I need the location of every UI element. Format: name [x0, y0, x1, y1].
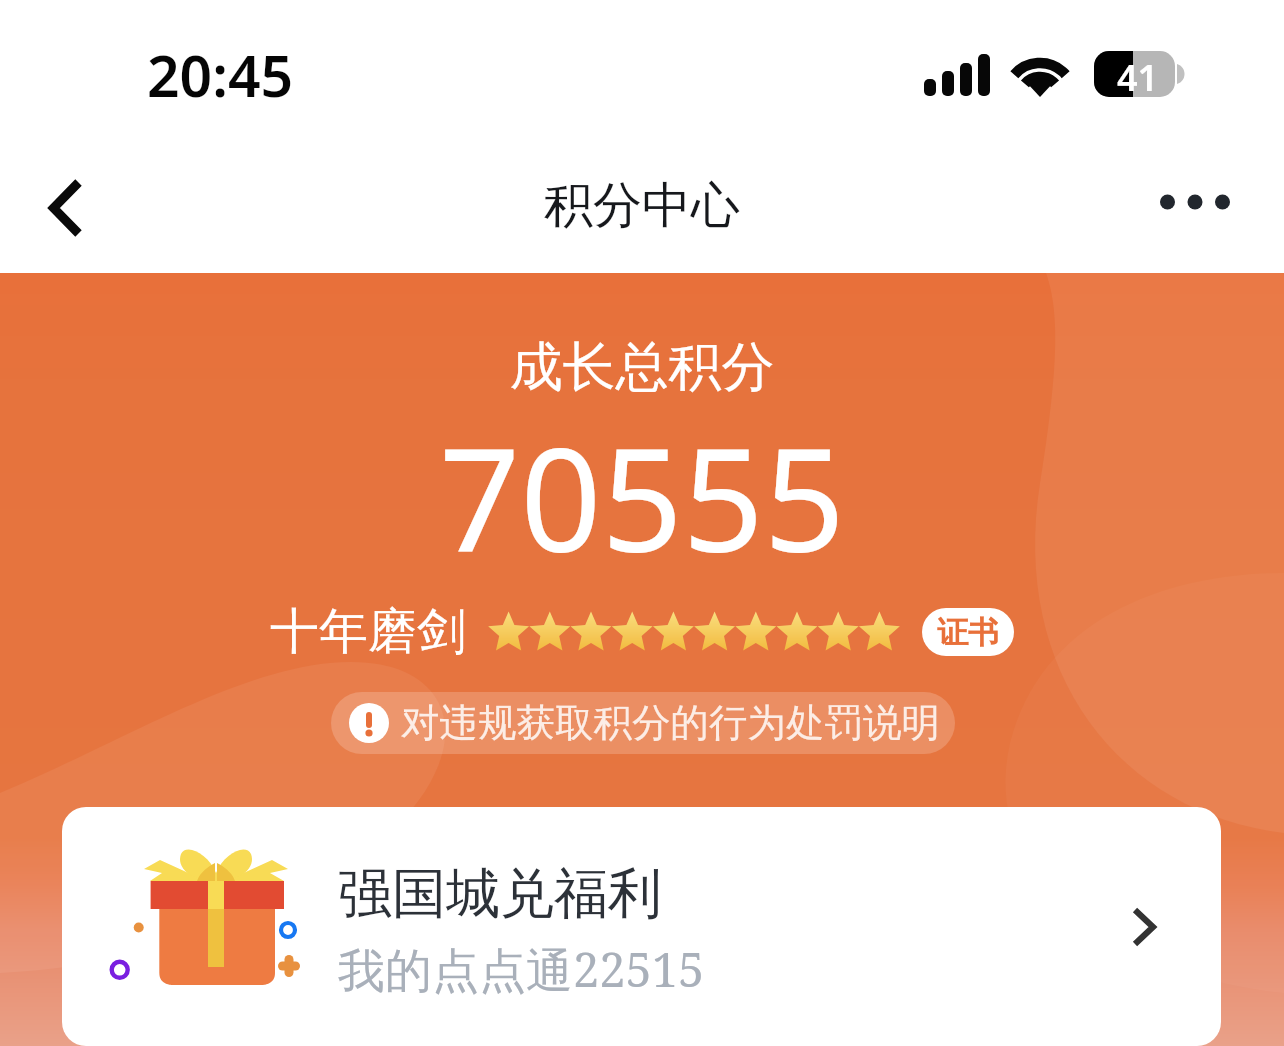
- staticText: 积分中心: [544, 175, 740, 237]
- button[interactable]: 证书: [922, 608, 1014, 656]
- staticText: 我的点点通22515: [338, 937, 705, 1001]
- staticText: 成长总积分: [0, 334, 1284, 401]
- button[interactable]: Back: [18, 160, 114, 256]
- staticText: 41: [1117, 53, 1159, 101]
- staticText: 对违规获取积分的行为处罚说明: [401, 699, 940, 748]
- button[interactable]: 对违规获取积分的行为处罚说明: [331, 692, 955, 754]
- staticText: 强国城兑福利: [338, 860, 662, 928]
- button[interactable]: 强国城兑福利: [62, 807, 1221, 1046]
- button[interactable]: More options: [1140, 162, 1250, 242]
- staticText: 20:45: [147, 36, 294, 114]
- staticText: 证书: [937, 613, 999, 652]
- staticText: 十年磨剑: [270, 601, 466, 663]
- staticText: 70555: [0, 400, 1284, 593]
